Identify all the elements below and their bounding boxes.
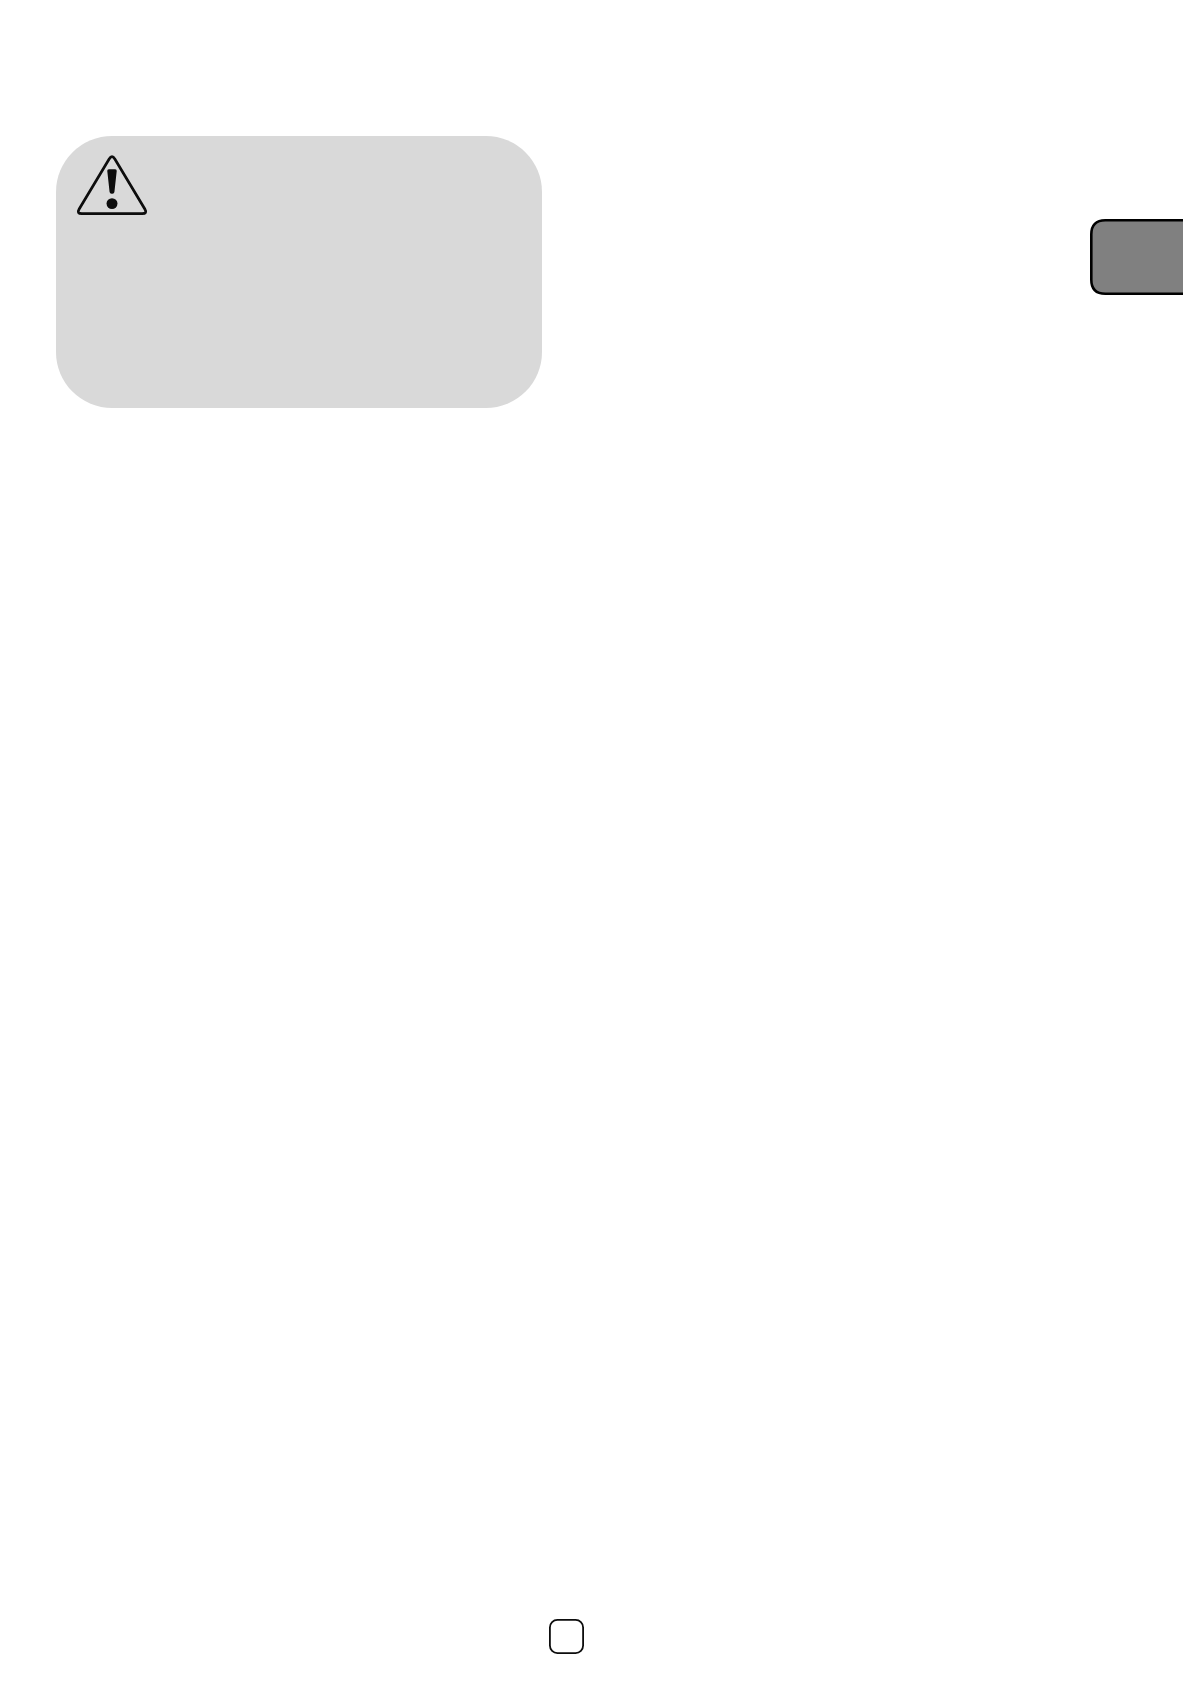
button[interactable]: Image placeholder	[56, 136, 542, 408]
button[interactable]: Panel	[1090, 219, 1183, 295]
button[interactable]: Action	[549, 1619, 584, 1654]
